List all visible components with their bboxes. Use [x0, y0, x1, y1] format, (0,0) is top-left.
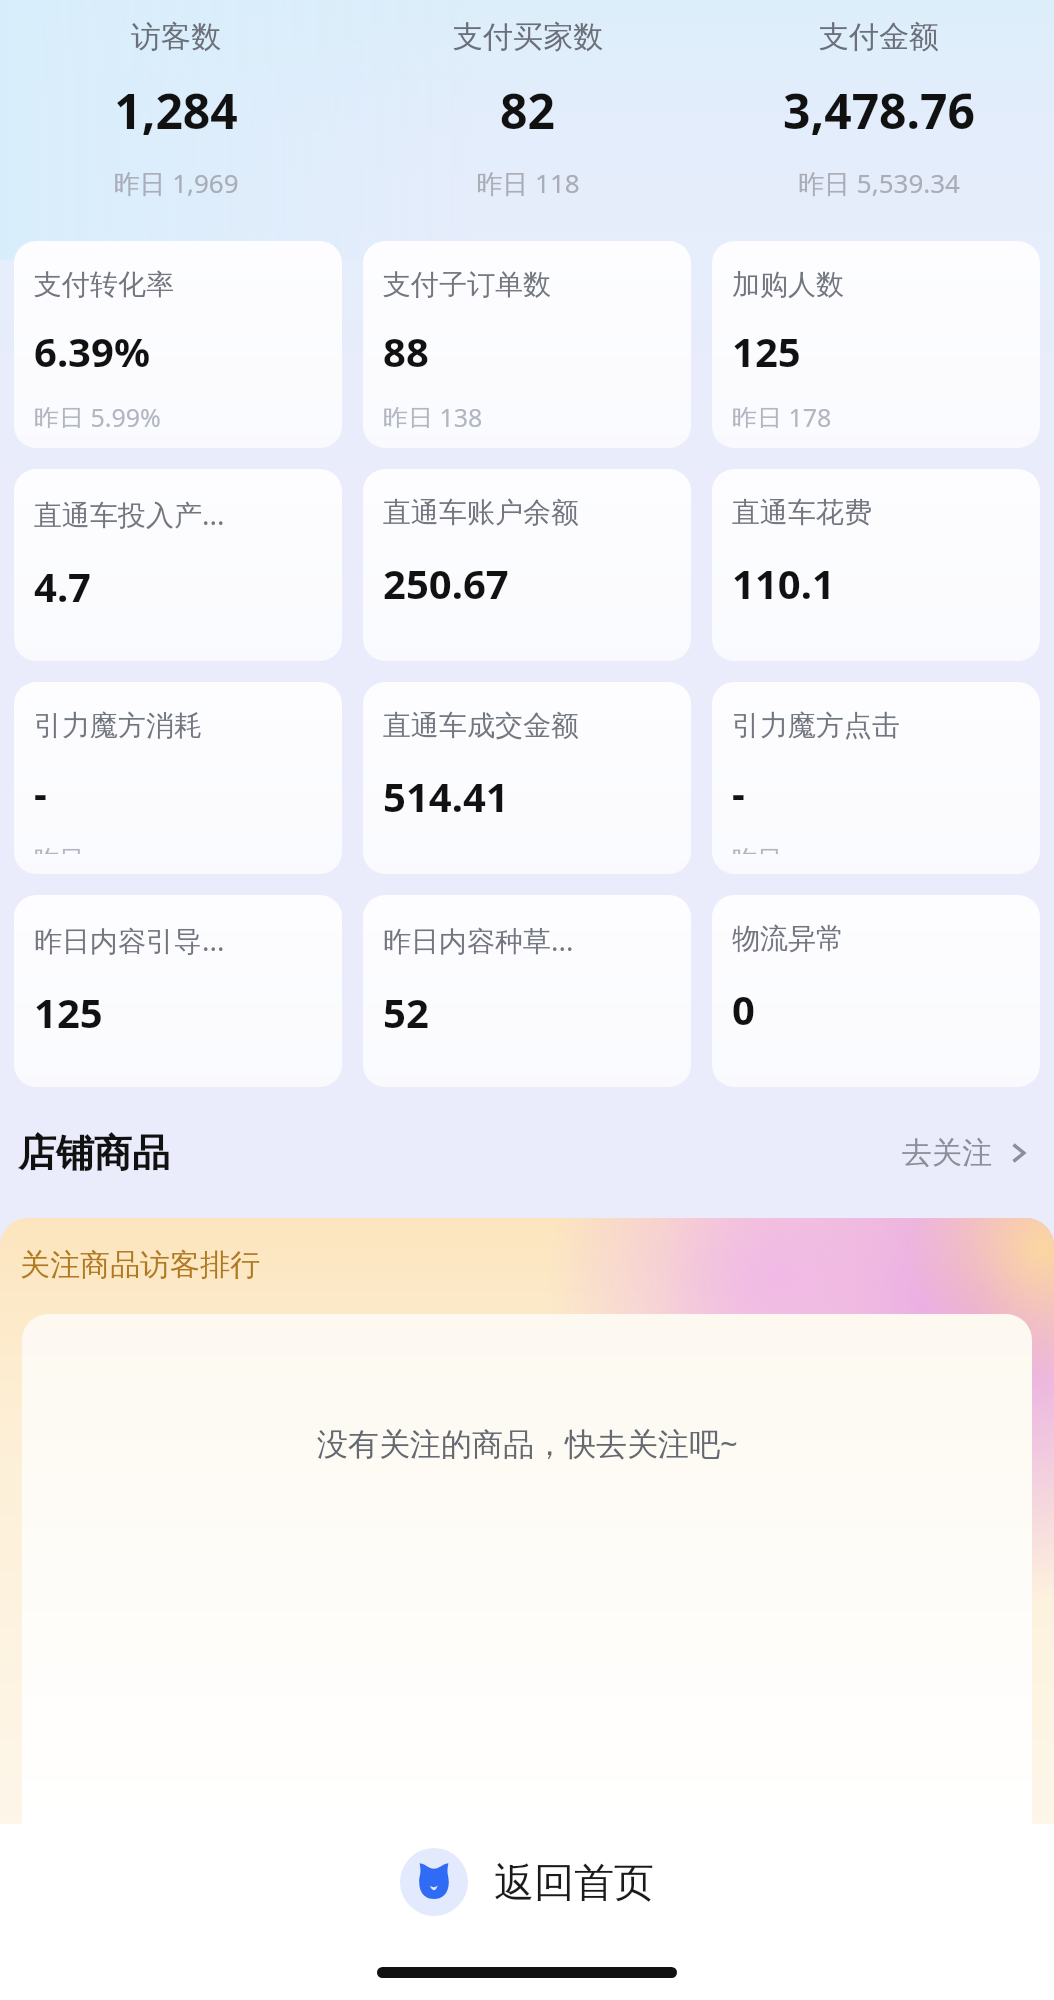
staticText: 昨日 5.99%	[34, 400, 161, 428]
staticText: 昨日 138	[383, 400, 483, 428]
staticText: 引力魔方消耗	[34, 708, 202, 743]
staticText: 昨日 118	[476, 165, 580, 201]
staticText: 0	[732, 982, 755, 1036]
staticText: 昨日内容种草...	[383, 921, 574, 959]
staticText: 125	[34, 985, 103, 1039]
button[interactable]: 支付转化率	[14, 241, 342, 448]
button[interactable]: 支付金额	[703, 18, 1054, 201]
staticText: 直通车成交金额	[383, 708, 579, 743]
button[interactable]: 加购人数	[712, 241, 1040, 448]
other: 返回首页	[400, 1848, 468, 1916]
staticText: 支付买家数	[453, 18, 603, 56]
staticText: -	[34, 765, 47, 819]
button[interactable]: 去关注	[898, 1126, 1034, 1180]
staticText: 直通车账户余额	[383, 495, 579, 530]
staticText: 支付金额	[819, 18, 939, 56]
button[interactable]: 昨日内容种草...	[363, 895, 691, 1087]
staticText: 110.1	[732, 556, 835, 610]
staticText: 加购人数	[732, 267, 844, 302]
button[interactable]: 物流异常	[712, 895, 1040, 1087]
staticText: 82	[500, 78, 555, 143]
button[interactable]: 直通车账户余额	[363, 469, 691, 661]
button[interactable]: 支付买家数	[352, 18, 703, 201]
staticText: 关注商品访客排行	[20, 1246, 260, 1284]
staticText: 店铺商品	[18, 1129, 170, 1177]
staticText: 昨日内容引导...	[34, 921, 225, 959]
button[interactable]: 直通车花费	[712, 469, 1040, 661]
staticText: 昨日 -	[732, 841, 797, 854]
button[interactable]: 直通车投入产...	[14, 469, 342, 661]
staticText: 514.41	[383, 769, 509, 823]
staticText: 直通车花费	[732, 495, 872, 530]
staticText: 返回首页	[494, 1857, 654, 1907]
staticText: 昨日 -	[34, 841, 99, 854]
button[interactable]: 返回首页	[386, 1838, 668, 1926]
button[interactable]: 引力魔方点击	[712, 682, 1040, 874]
staticText: 支付转化率	[34, 267, 174, 302]
staticText: 昨日 1,969	[113, 165, 239, 201]
staticText: 52	[383, 985, 429, 1039]
staticText: -	[732, 765, 745, 819]
staticText: 去关注	[902, 1134, 992, 1172]
staticText: 支付子订单数	[383, 267, 551, 302]
staticText: 125	[732, 324, 801, 378]
staticText: 直通车投入产...	[34, 495, 225, 533]
button[interactable]: 访客数	[0, 18, 352, 201]
staticText: 引力魔方点击	[732, 708, 900, 743]
staticText: 250.67	[383, 556, 509, 610]
staticText: 6.39%	[34, 324, 150, 378]
staticText: 昨日 178	[732, 400, 832, 428]
button[interactable]: 支付子订单数	[363, 241, 691, 448]
button[interactable]: 引力魔方消耗	[14, 682, 342, 874]
staticText: 没有关注的商品，快去关注吧~	[317, 1422, 738, 1464]
staticText: 昨日 5,539.34	[798, 165, 960, 201]
staticText: 访客数	[131, 18, 221, 56]
staticText: 物流异常	[732, 921, 844, 956]
staticText: 88	[383, 324, 429, 378]
staticText: 1,284	[114, 78, 238, 143]
button[interactable]: 昨日内容引导...	[14, 895, 342, 1087]
button[interactable]: 直通车成交金额	[363, 682, 691, 874]
staticText: 4.7	[34, 559, 91, 613]
staticText: 3,478.76	[783, 78, 975, 143]
